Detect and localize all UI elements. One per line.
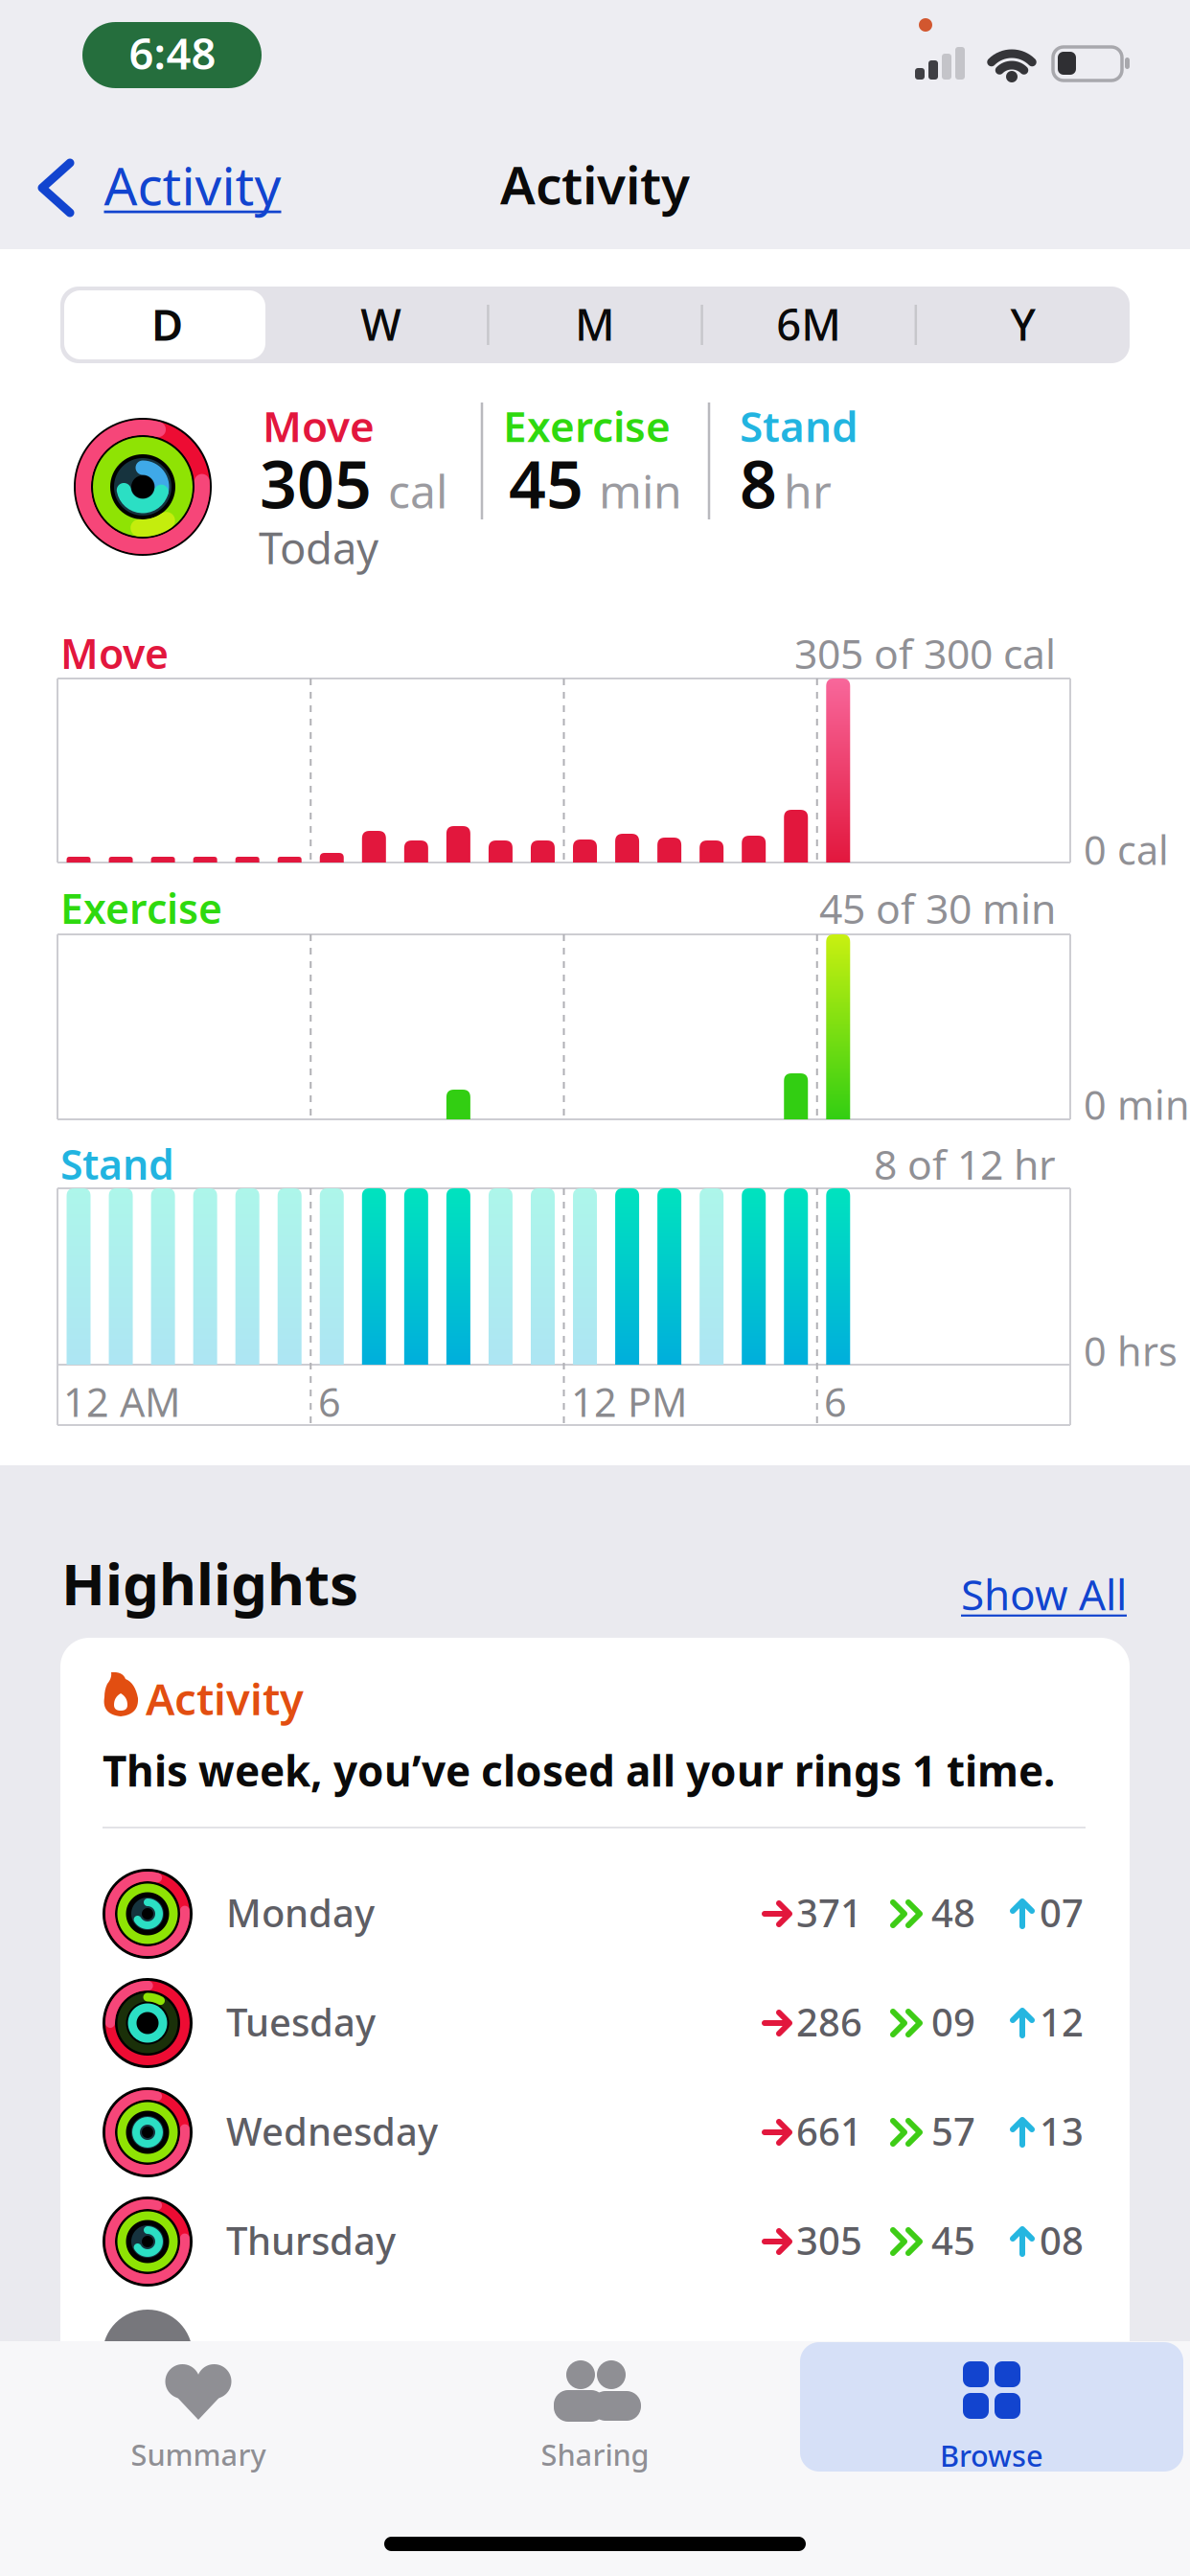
- staticText: Sharing: [541, 2435, 649, 2474]
- button[interactable]: Browse: [800, 2342, 1183, 2472]
- staticText: Monday: [226, 1887, 375, 1938]
- staticText: Today: [259, 518, 378, 576]
- staticText: hr: [784, 460, 832, 521]
- button[interactable]: D: [63, 286, 271, 362]
- staticText: Browse: [940, 2436, 1043, 2475]
- staticText: Y: [1010, 295, 1035, 353]
- button[interactable]: Show All: [744, 1566, 1127, 1622]
- staticText: 12 PM: [571, 1375, 687, 1428]
- staticText: 45: [931, 2215, 975, 2266]
- button[interactable]: Y: [919, 286, 1127, 362]
- staticText: Move: [60, 626, 169, 680]
- button[interactable]: Summary: [16, 2341, 380, 2475]
- staticText: Stand: [740, 398, 858, 454]
- staticText: 6M: [776, 295, 841, 353]
- button[interactable]: Activity: [0, 0, 1190, 2576]
- button[interactable]: Activity: [0, 144, 297, 232]
- staticText: cal: [388, 460, 447, 521]
- staticText: D: [151, 295, 183, 353]
- staticText: 48: [931, 1887, 975, 1938]
- staticText: M: [575, 295, 615, 353]
- staticText: 09: [931, 1996, 975, 2047]
- staticText: 661: [796, 2105, 862, 2156]
- staticText: Show All: [961, 1566, 1127, 1622]
- staticText: 07: [1040, 1887, 1084, 1938]
- staticText: Move: [263, 398, 375, 454]
- staticText: 286: [796, 1996, 862, 2047]
- staticText: Exercise: [60, 881, 222, 935]
- staticText: 6: [824, 1375, 847, 1428]
- staticText: W: [361, 295, 402, 353]
- staticText: Activity: [500, 149, 690, 219]
- staticText: 0 hrs: [1084, 1324, 1178, 1377]
- button[interactable]: 6M: [705, 286, 913, 362]
- staticText: Tuesday: [226, 1996, 376, 2047]
- staticText: 12 AM: [63, 1375, 180, 1428]
- staticText: 57: [931, 2105, 975, 2156]
- button[interactable]: M: [491, 286, 699, 362]
- staticText: This week, you’ve closed all your rings …: [103, 1742, 1055, 1798]
- staticText: 45: [509, 440, 584, 526]
- staticText: 6:48: [129, 24, 216, 82]
- staticText: Highlights: [61, 1545, 358, 1621]
- staticText: 08: [1040, 2215, 1084, 2266]
- staticText: 45 of 30 min: [819, 881, 1056, 935]
- staticText: 12: [1040, 1996, 1084, 2047]
- staticText: Activity: [146, 1669, 304, 1727]
- staticText: 0 cal: [1084, 823, 1169, 876]
- staticText: Wednesday: [226, 2105, 438, 2156]
- staticText: Activity: [104, 150, 281, 220]
- staticText: 6: [318, 1375, 341, 1428]
- staticText: 0 min: [1084, 1078, 1190, 1131]
- staticText: 371: [796, 1887, 862, 1938]
- button[interactable]: W: [277, 286, 485, 362]
- staticText: 305: [260, 440, 372, 526]
- staticText: 8 of 12 hr: [874, 1137, 1056, 1191]
- staticText: 13: [1040, 2105, 1084, 2156]
- button[interactable]: Sharing: [413, 2341, 777, 2475]
- staticText: 305: [796, 2215, 862, 2266]
- staticText: 8: [740, 440, 777, 526]
- staticText: Summary: [131, 2435, 266, 2474]
- staticText: 305 of 300 cal: [794, 626, 1056, 680]
- staticText: Thursday: [226, 2215, 396, 2266]
- staticText: Stand: [60, 1137, 174, 1191]
- staticText: Exercise: [503, 398, 671, 454]
- staticText: min: [599, 460, 682, 521]
